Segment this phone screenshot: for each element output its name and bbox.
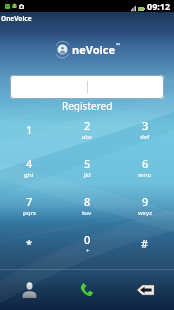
staticText: 9	[142, 194, 149, 209]
staticText: def	[140, 133, 150, 141]
staticText: OneVoice	[1, 14, 32, 23]
staticText: pqrs	[23, 209, 36, 217]
staticText: 09:12	[147, 0, 171, 12]
button[interactable]: #	[116, 224, 174, 262]
button[interactable]: 9	[116, 186, 174, 224]
button[interactable]: 1	[0, 110, 58, 148]
staticText: tuv	[82, 209, 92, 217]
staticText: 8	[84, 194, 91, 209]
button[interactable]: 0	[58, 224, 116, 262]
button[interactable]: 2	[58, 110, 116, 148]
staticText: 7	[26, 194, 33, 209]
staticText: jkl	[84, 171, 91, 179]
staticText: 6	[142, 156, 149, 171]
staticText: Registered	[62, 99, 113, 112]
button[interactable]: Call	[58, 269, 116, 310]
button[interactable]: Contacts	[0, 269, 58, 310]
staticText: 3	[142, 118, 149, 133]
button[interactable]: 8	[58, 186, 116, 224]
button[interactable]: 4	[0, 148, 58, 186]
button[interactable]: Backspace	[116, 269, 174, 310]
button[interactable]: 3	[116, 110, 174, 148]
button[interactable]: *	[0, 224, 58, 262]
button[interactable]: 5	[58, 148, 116, 186]
staticText: 1	[26, 122, 33, 137]
button[interactable]: OneVoice	[0, 12, 174, 25]
staticText: wxyz	[138, 209, 153, 217]
staticText: 2	[84, 118, 91, 133]
staticText: ghi	[24, 171, 34, 179]
staticText: 4	[26, 156, 33, 171]
staticText: neVoice	[72, 42, 116, 57]
button[interactable]	[10, 75, 164, 99]
staticText: abc	[82, 133, 93, 141]
staticText: ™	[116, 42, 120, 49]
button[interactable]: 6	[116, 148, 174, 186]
staticText: #	[141, 236, 149, 251]
staticText: *	[26, 236, 33, 251]
staticText: mno	[138, 171, 152, 179]
staticText: 5	[84, 156, 91, 171]
staticText: 0	[84, 232, 91, 247]
button[interactable]: 7	[0, 186, 58, 224]
staticText: +	[86, 247, 90, 255]
